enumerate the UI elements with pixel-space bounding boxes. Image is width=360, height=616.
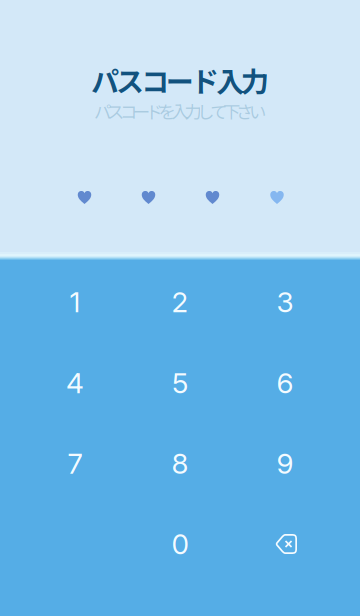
staticText: 2 (171, 285, 188, 319)
staticText: 5 (172, 366, 188, 400)
button[interactable]: 6 (232, 343, 337, 423)
staticText: 3 (276, 285, 293, 319)
staticText: 1 (69, 285, 80, 319)
staticText: 6 (276, 366, 293, 400)
button[interactable]: 4 (22, 343, 127, 423)
button[interactable]: 7 (22, 423, 127, 503)
staticText: 4 (66, 366, 84, 400)
button[interactable]: 1 (22, 262, 127, 342)
staticText: 8 (171, 447, 188, 480)
button[interactable]: 2 (127, 262, 232, 342)
staticText: 7 (67, 447, 82, 480)
button[interactable]: 9 (232, 423, 337, 503)
button[interactable]: 5 (127, 343, 232, 423)
button[interactable]: Delete (233, 504, 338, 584)
staticText: 9 (276, 447, 293, 480)
staticText: パスコード入力 (91, 60, 269, 100)
button[interactable]: 3 (232, 262, 337, 342)
button[interactable]: 0 (127, 504, 232, 584)
staticText: パスコードを入力して下さい (94, 98, 266, 124)
button[interactable]: 8 (127, 423, 232, 503)
staticText: 0 (171, 527, 188, 561)
